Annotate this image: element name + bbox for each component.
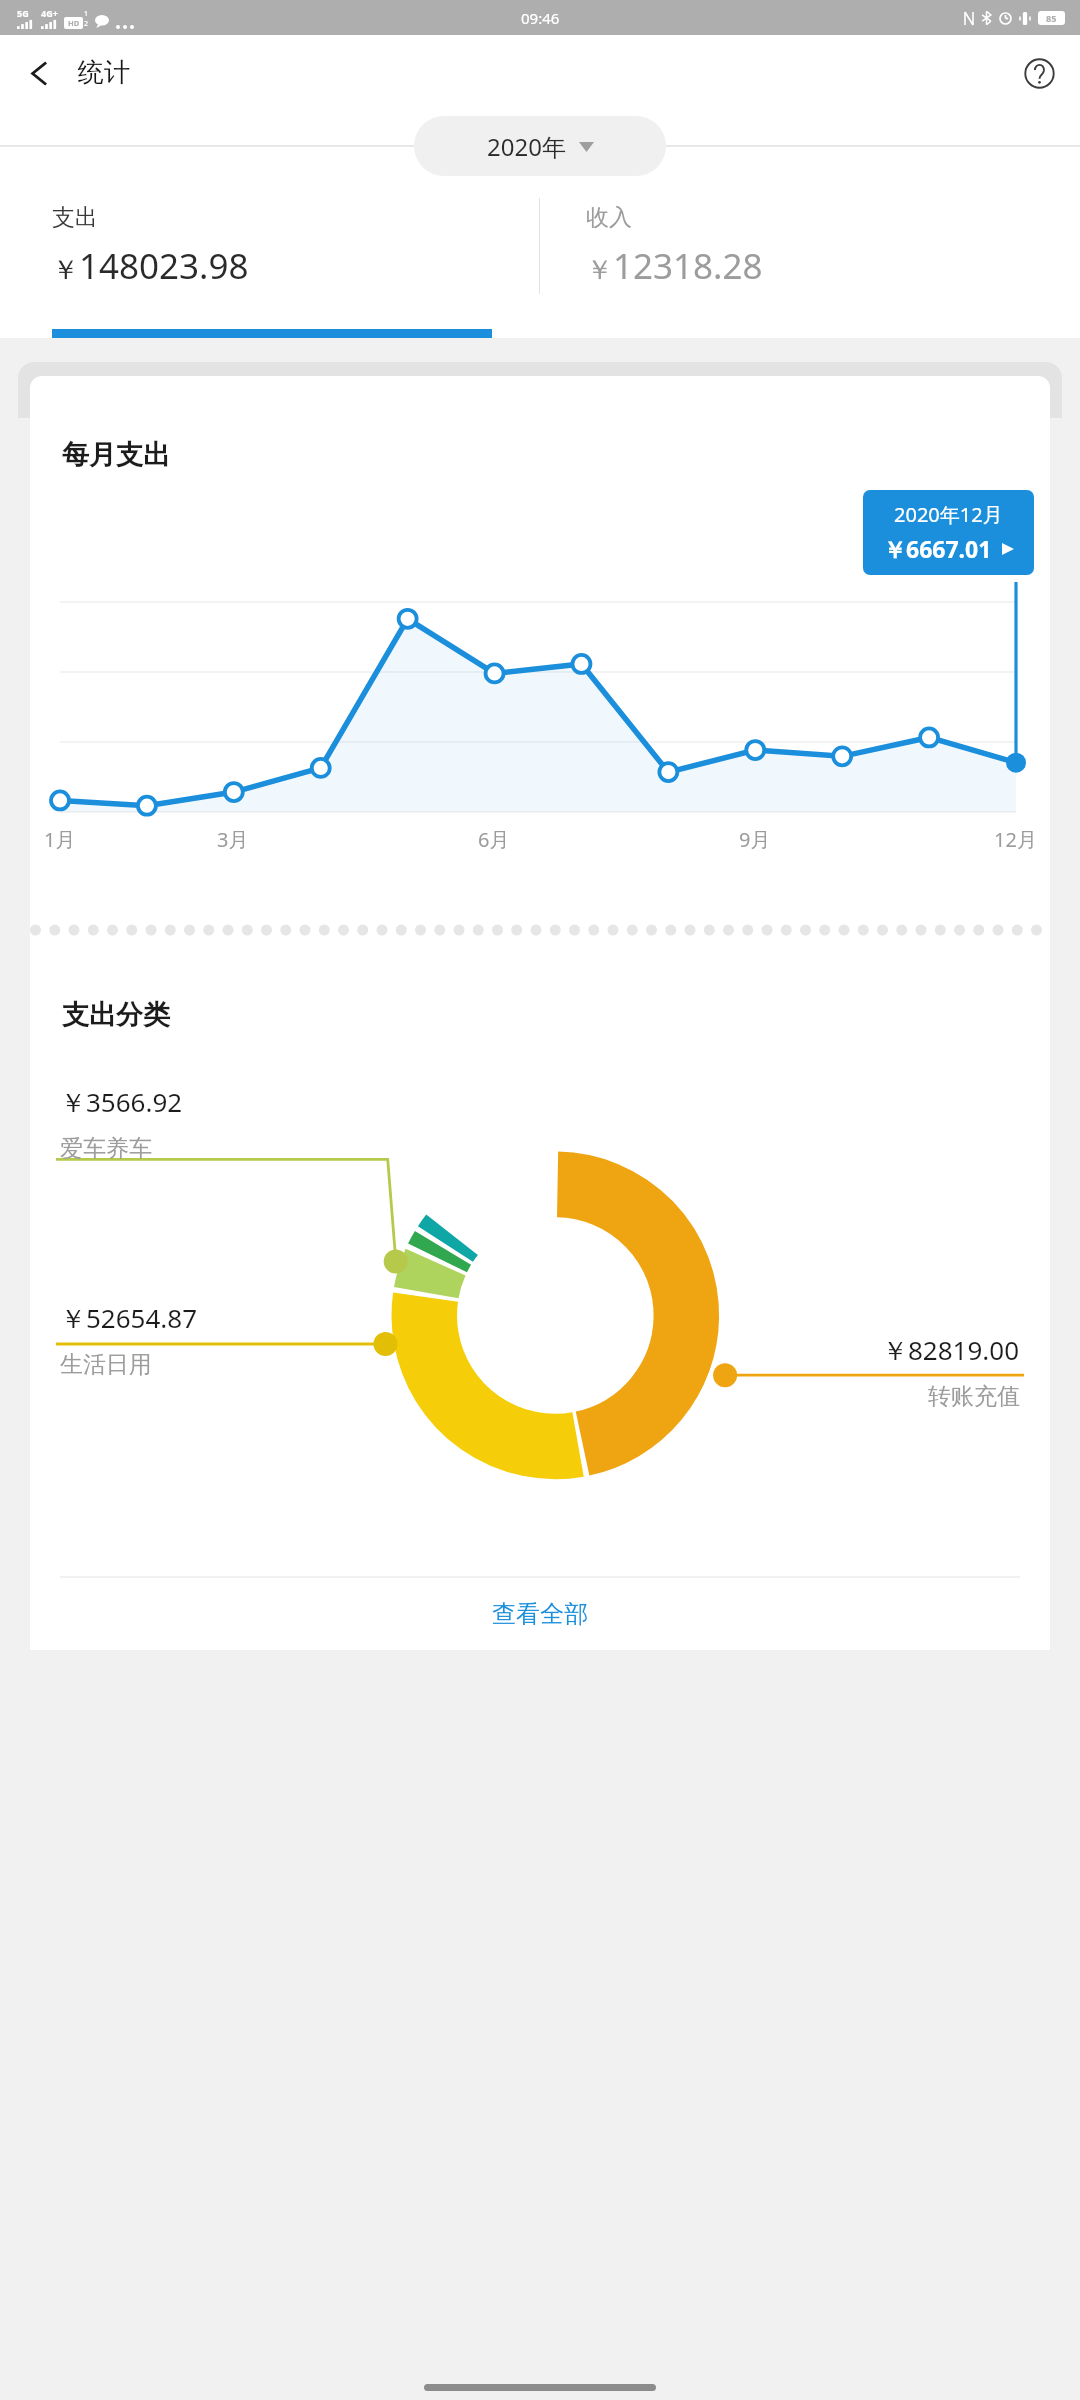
staticText: 生活日用: [60, 1350, 152, 1379]
staticText: 1月: [44, 826, 76, 853]
staticText: HD: [68, 18, 80, 28]
staticText: 爱车养车: [60, 1134, 152, 1163]
staticText: 支出分类: [62, 998, 170, 1032]
staticText: 12318.28: [613, 242, 763, 290]
staticText: 3月: [217, 826, 249, 853]
staticText: 6月: [478, 826, 510, 853]
staticText: 9月: [739, 826, 771, 853]
staticText: 85: [1046, 12, 1057, 24]
staticText: 2: [84, 19, 89, 29]
staticText: 收入: [586, 203, 632, 232]
staticText: 4G+: [41, 7, 58, 19]
staticText: 2020年12月: [894, 501, 1003, 528]
staticText: 2020年: [487, 130, 566, 163]
staticText: 12月: [994, 826, 1037, 853]
staticText: ￥: [586, 253, 613, 287]
staticText: 每月支出: [62, 438, 170, 472]
staticText: ￥52654.87: [60, 1300, 198, 1336]
staticText: ￥6667.01: [883, 533, 992, 564]
button[interactable]: 2020年: [414, 116, 666, 176]
staticText: ￥82819.00: [882, 1332, 1020, 1368]
staticText: ￥3566.92: [60, 1084, 183, 1120]
staticText: 148023.98: [79, 242, 249, 290]
button[interactable]: Help: [1012, 46, 1066, 100]
staticText: 转账充值: [928, 1382, 1020, 1411]
staticText: 5G: [17, 7, 29, 19]
button[interactable]: 支出: [0, 182, 539, 310]
staticText: 统计: [78, 56, 130, 89]
staticText: 09:46: [521, 8, 560, 28]
staticText: 支出: [52, 203, 98, 232]
staticText: ￥: [52, 253, 79, 287]
button[interactable]: Back: [10, 44, 68, 102]
button[interactable]: 2020年12月: [863, 490, 1034, 575]
staticText: 查看全部: [492, 1599, 588, 1629]
staticText: 1: [84, 9, 89, 19]
button[interactable]: 查看全部: [30, 1578, 1050, 1650]
button[interactable]: 收入: [540, 182, 1080, 310]
